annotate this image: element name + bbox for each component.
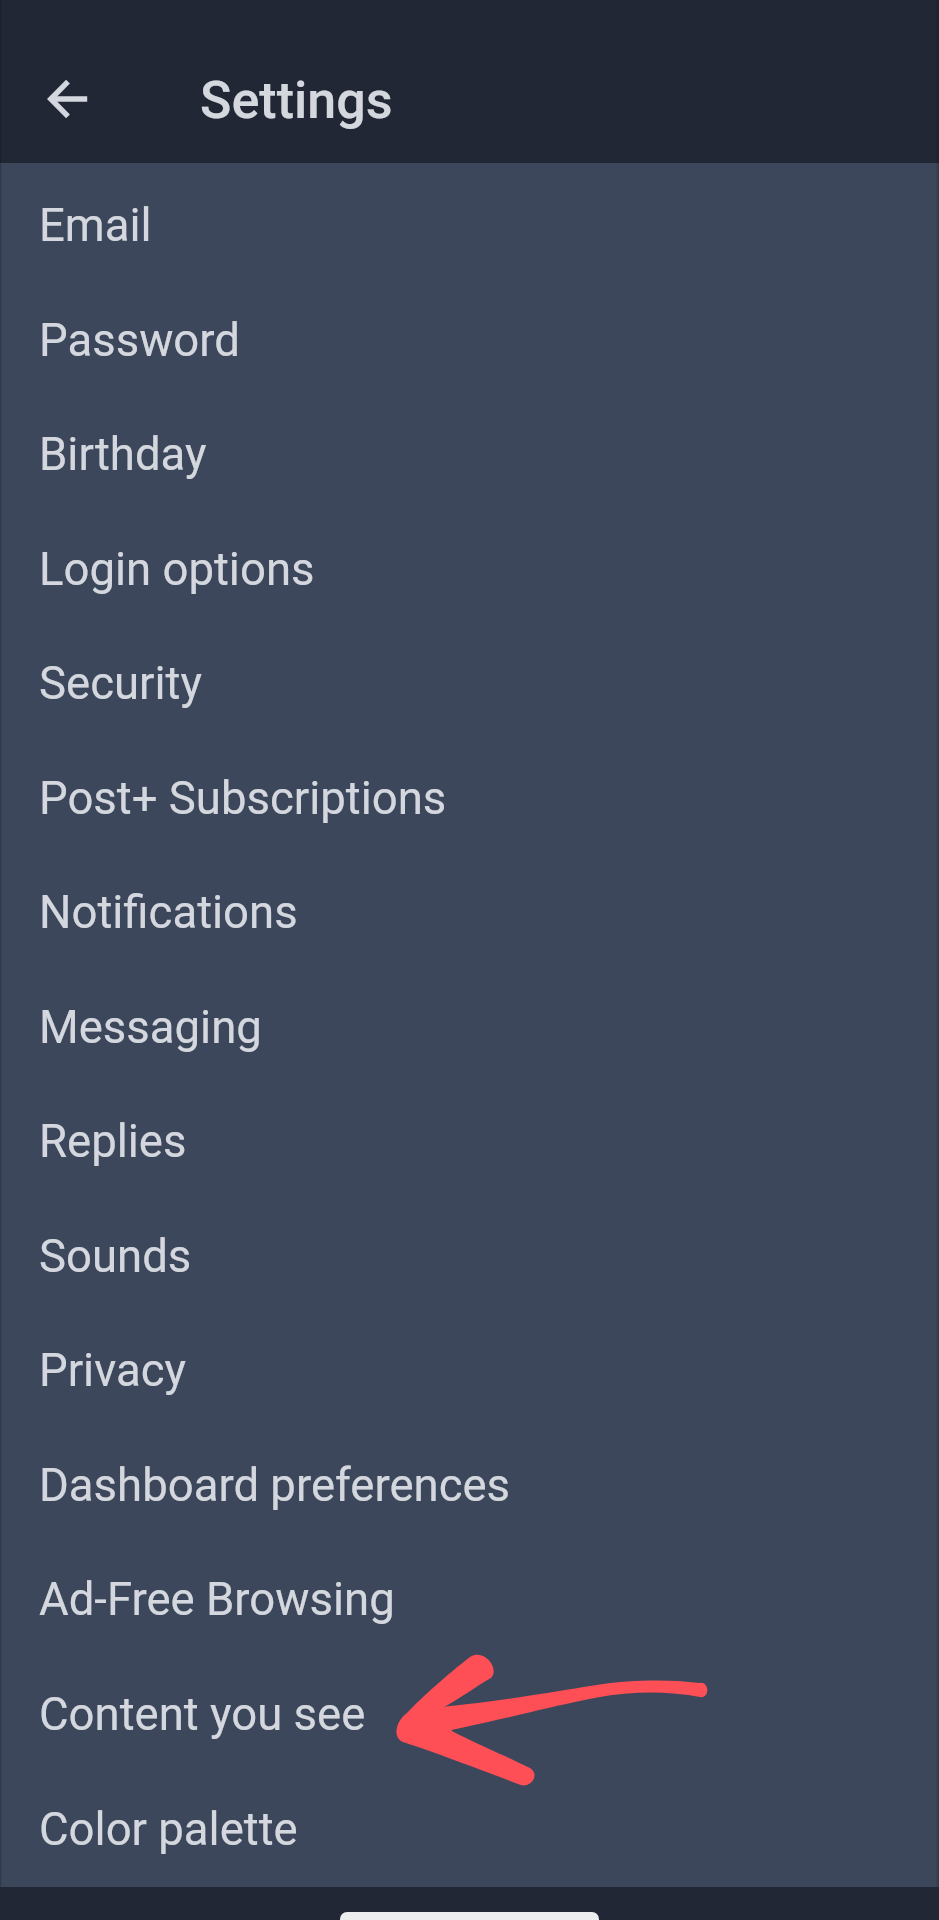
- staticText: Settings: [200, 70, 393, 131]
- staticText: Dashboard preferences: [39, 1459, 511, 1512]
- staticText: Email: [39, 199, 152, 252]
- button[interactable]: Ad-Free Browsing: [0, 1543, 939, 1658]
- staticText: Ad-Free Browsing: [39, 1573, 395, 1626]
- other: Home: [340, 1912, 599, 1920]
- staticText: Privacy: [39, 1344, 186, 1397]
- staticText: Post+ Subscriptions: [39, 772, 447, 825]
- button[interactable]: Content you see: [0, 1658, 939, 1773]
- button[interactable]: Security: [0, 627, 939, 742]
- staticText: Content you see: [39, 1688, 366, 1741]
- button[interactable]: Back: [21, 51, 117, 147]
- staticText: Birthday: [39, 428, 207, 481]
- button[interactable]: Privacy: [0, 1314, 939, 1429]
- button[interactable]: Sounds: [0, 1200, 939, 1315]
- staticText: Sounds: [39, 1230, 192, 1283]
- staticText: Color palette: [39, 1803, 298, 1856]
- button[interactable]: Post+ Subscriptions: [0, 742, 939, 857]
- button[interactable]: Password: [0, 284, 939, 399]
- button[interactable]: Notifications: [0, 856, 939, 971]
- staticText: Password: [39, 314, 240, 367]
- staticText: Notifications: [39, 886, 298, 939]
- button[interactable]: Email: [0, 169, 939, 284]
- staticText: Replies: [39, 1115, 187, 1168]
- button[interactable]: Replies: [0, 1085, 939, 1200]
- button[interactable]: Dashboard preferences: [0, 1429, 939, 1544]
- staticText: Login options: [39, 543, 315, 596]
- staticText: Messaging: [39, 1001, 262, 1054]
- staticText: Security: [39, 657, 202, 710]
- button[interactable]: Messaging: [0, 971, 939, 1086]
- button[interactable]: Login options: [0, 513, 939, 628]
- button[interactable]: Birthday: [0, 398, 939, 513]
- button[interactable]: Color palette: [0, 1773, 939, 1888]
